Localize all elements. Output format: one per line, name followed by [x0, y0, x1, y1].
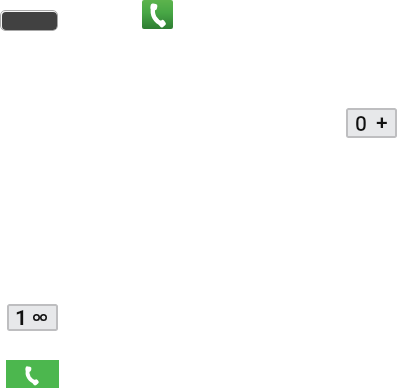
button[interactable]	[0, 10, 58, 31]
button[interactable]: 1	[7, 304, 58, 331]
staticText: 1	[15, 306, 28, 331]
staticText: 0	[355, 112, 367, 137]
staticText: +	[376, 110, 388, 135]
button[interactable]: Phone	[142, 0, 173, 29]
button[interactable]: Call	[6, 360, 59, 388]
button[interactable]: 0	[346, 108, 397, 138]
